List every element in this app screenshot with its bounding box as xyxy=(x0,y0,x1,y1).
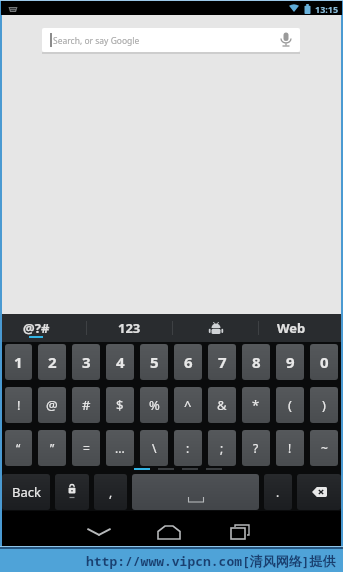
staticText: ? xyxy=(253,440,259,456)
button[interactable]: ) xyxy=(310,387,338,423)
staticText: $ xyxy=(116,396,124,414)
staticText: % xyxy=(149,396,160,414)
button[interactable]: 123 xyxy=(87,314,172,342)
staticText: ( xyxy=(288,396,292,414)
staticText: 3 xyxy=(82,352,91,372)
button[interactable]: % xyxy=(140,387,168,423)
staticText: ! xyxy=(17,396,21,414)
staticText: 2 xyxy=(48,352,57,372)
staticText: “ xyxy=(16,440,21,456)
staticText: 9 xyxy=(286,352,295,372)
button[interactable] xyxy=(297,474,341,510)
button[interactable]: : xyxy=(174,430,202,466)
staticText: http://www.vipcn.com[清风网络]提供 xyxy=(86,552,336,570)
button[interactable]: 7 xyxy=(208,344,236,380)
staticText: Back xyxy=(12,483,41,501)
button[interactable]: @ xyxy=(38,387,66,423)
button[interactable]: Back xyxy=(2,474,50,510)
button[interactable]: “ xyxy=(5,430,32,466)
button[interactable]: = xyxy=(72,430,100,466)
button[interactable]: @?# xyxy=(2,314,86,342)
staticText: : xyxy=(186,440,190,456)
staticText: = xyxy=(83,440,90,456)
staticText: ! xyxy=(288,440,292,456)
staticText: * xyxy=(252,396,260,414)
button[interactable]: \ xyxy=(140,430,168,466)
button[interactable]: Search, or say Google xyxy=(42,28,300,52)
button[interactable]: 1 xyxy=(5,344,32,380)
staticText: # xyxy=(82,396,91,414)
staticText: 123 xyxy=(118,319,141,337)
button[interactable] xyxy=(55,474,89,510)
button[interactable]: * xyxy=(242,387,270,423)
staticText: Search, or say Google xyxy=(53,35,140,47)
staticText: . xyxy=(276,484,280,500)
button[interactable] xyxy=(132,474,259,510)
staticText: ” xyxy=(50,440,55,456)
button[interactable]: . xyxy=(264,474,292,510)
button[interactable]: ! xyxy=(276,430,304,466)
button[interactable]: 5 xyxy=(140,344,168,380)
button[interactable]: 3 xyxy=(72,344,100,380)
staticText: ) xyxy=(322,396,326,414)
staticText: Web xyxy=(277,319,306,337)
button[interactable] xyxy=(173,314,258,342)
button[interactable]: , xyxy=(94,474,127,510)
button[interactable]: ; xyxy=(208,430,236,466)
staticText: \ xyxy=(152,440,157,456)
button[interactable]: & xyxy=(208,387,236,423)
button[interactable] xyxy=(84,521,114,543)
staticText: 6 xyxy=(184,352,193,372)
button[interactable] xyxy=(154,521,184,543)
staticText: 1 xyxy=(14,352,23,372)
staticText: @ xyxy=(46,396,58,414)
button[interactable]: 9 xyxy=(276,344,304,380)
staticText: 0 xyxy=(320,352,329,372)
staticText: ^ xyxy=(184,396,192,414)
button[interactable]: ~ xyxy=(310,430,338,466)
staticText: & xyxy=(217,396,227,414)
button[interactable]: ... xyxy=(106,430,134,466)
button[interactable] xyxy=(225,521,255,543)
staticText: , xyxy=(109,484,113,500)
button[interactable]: 8 xyxy=(242,344,270,380)
button[interactable]: # xyxy=(72,387,100,423)
button[interactable]: 2 xyxy=(38,344,66,380)
button[interactable]: ( xyxy=(276,387,304,423)
button[interactable]: ” xyxy=(38,430,66,466)
button[interactable]: 4 xyxy=(106,344,134,380)
staticText: 7 xyxy=(218,352,227,372)
staticText: ; xyxy=(220,440,224,456)
button[interactable]: $ xyxy=(106,387,134,423)
staticText: 13:15 xyxy=(315,3,339,15)
button[interactable]: 0 xyxy=(310,344,338,380)
button[interactable]: ^ xyxy=(174,387,202,423)
button[interactable]: 6 xyxy=(174,344,202,380)
staticText: @?# xyxy=(23,319,50,337)
button[interactable]: ! xyxy=(5,387,32,423)
staticText: ... xyxy=(115,440,125,456)
staticText: 8 xyxy=(252,352,261,372)
staticText: 5 xyxy=(150,352,159,372)
staticText: 4 xyxy=(116,352,125,372)
button[interactable]: Web xyxy=(259,314,341,342)
button[interactable]: ? xyxy=(242,430,270,466)
staticText: ~ xyxy=(321,440,328,456)
